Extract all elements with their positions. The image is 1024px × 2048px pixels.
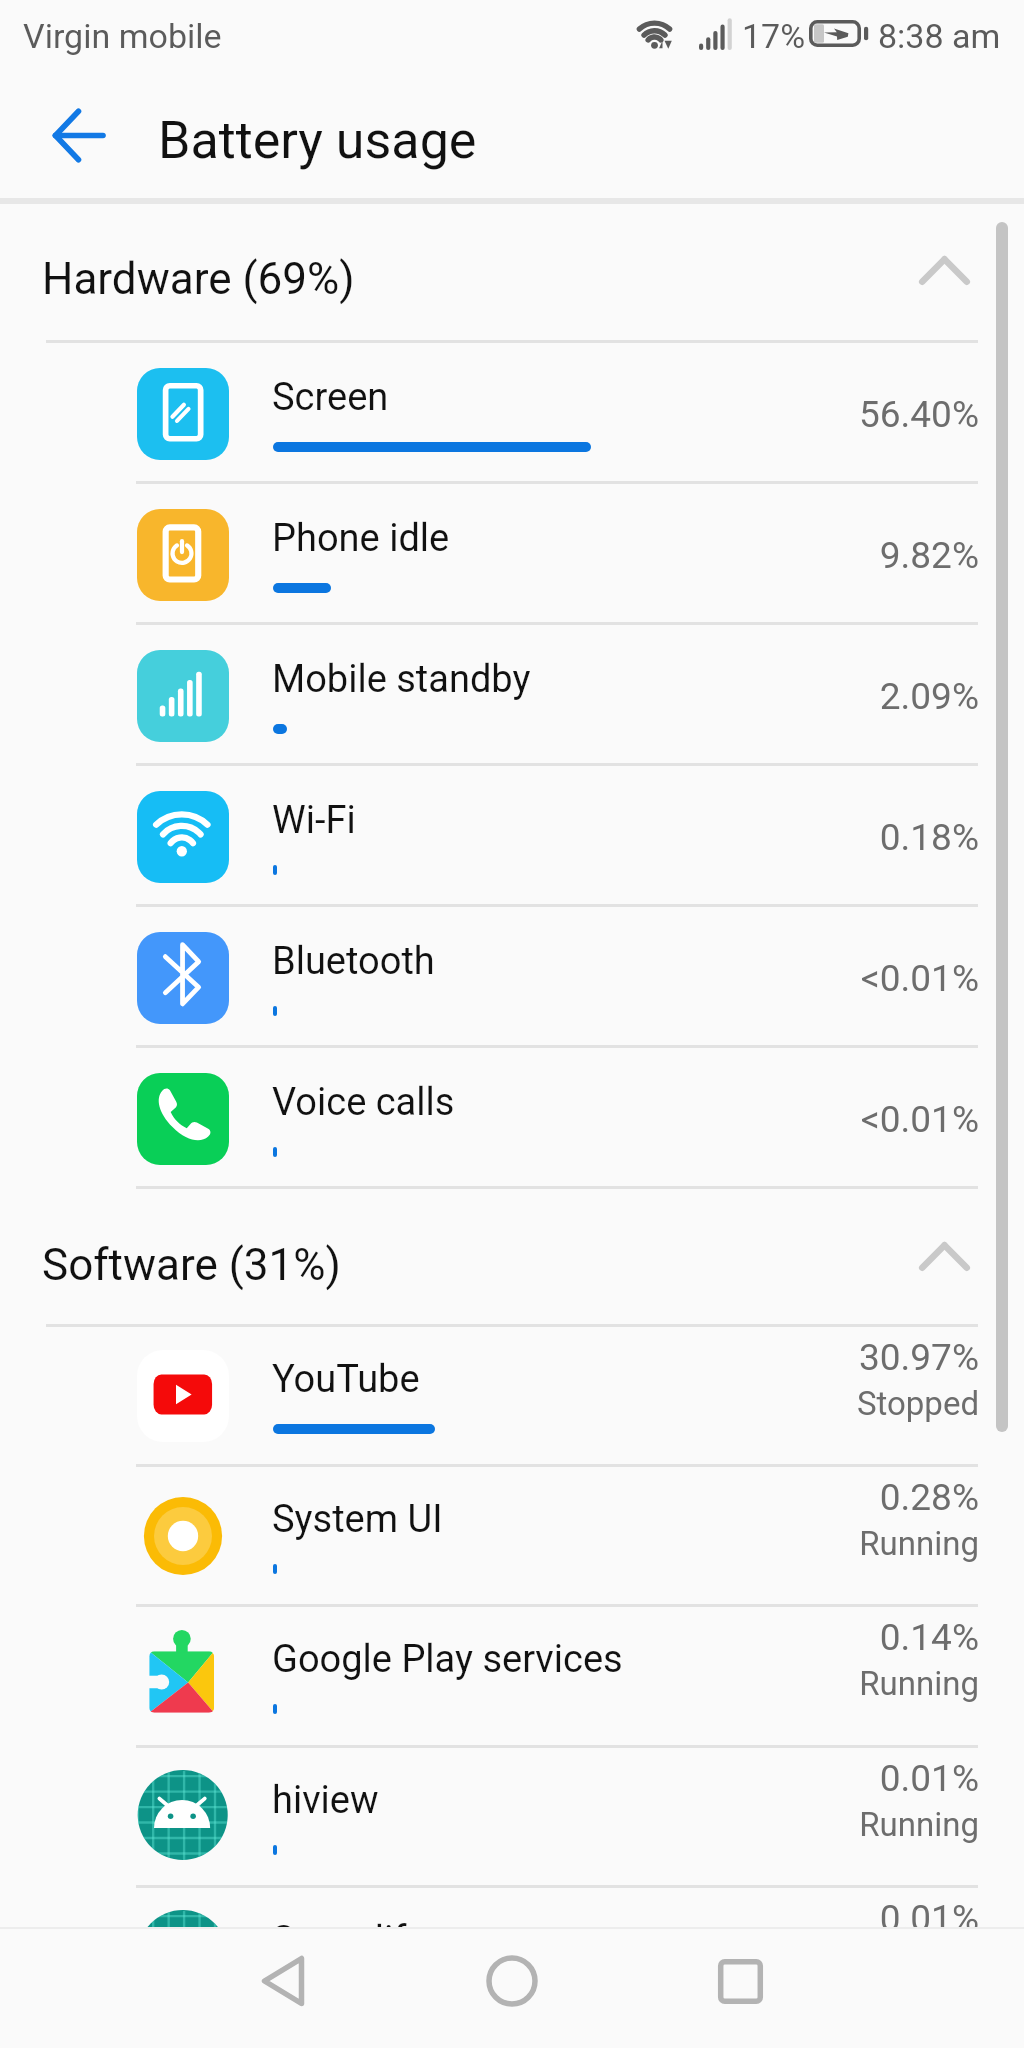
staticText: Wi-Fi [272,798,356,843]
staticText: Bluetooth [272,939,435,984]
staticText: 56.40% [600,393,979,436]
button[interactable]: YouTube [0,1324,1024,1464]
staticText: Voice calls [272,1080,455,1125]
staticText: Smartlife [272,1918,427,1963]
staticText: 0.18% [600,816,979,859]
button[interactable]: Voice calls [0,1045,1024,1186]
button[interactable]: Recent apps [685,1927,795,2037]
button[interactable]: Phone idle [0,481,1024,622]
staticText: Screen [272,375,389,420]
staticText: 0.01% [600,1757,979,1800]
staticText: Mobile standby [272,657,531,702]
button[interactable]: System UI [0,1464,1024,1604]
staticText: Stopped [600,1384,979,1423]
button[interactable]: Home [457,1927,567,2037]
staticText: Running [600,1805,979,1844]
staticText: <0.01% [600,957,979,1000]
staticText: YouTube [272,1357,420,1402]
staticText: Running [600,1945,979,1984]
staticText: Running [600,1664,979,1703]
button[interactable]: Navigate up [26,83,130,187]
button[interactable]: Wi-Fi [0,763,1024,904]
staticText: Software (31%) [42,1239,341,1291]
staticText: 17% [742,16,806,56]
button[interactable]: Screen [0,340,1024,481]
button[interactable]: Google Play services [0,1604,1024,1745]
button[interactable]: hiview [0,1745,1024,1885]
staticText: Battery usage [158,110,477,171]
button[interactable]: Bluetooth [0,904,1024,1045]
staticText: 0.01% [600,1897,979,1940]
button[interactable]: Smartlife [0,1885,1024,2026]
button[interactable]: Back [228,1927,338,2037]
button[interactable]: Mobile standby [0,622,1024,763]
staticText: Phone idle [272,516,450,561]
staticText: 2.09% [600,675,979,718]
staticText: Running [600,1524,979,1563]
staticText: 8:38 am [878,16,1001,56]
staticText: Hardware (69%) [42,253,355,305]
staticText: System UI [272,1497,443,1542]
staticText: Google Play services [272,1637,623,1682]
staticText: 30.97% [600,1336,979,1379]
button[interactable]: Hardware (69%) [0,200,1024,340]
staticText: hiview [272,1778,379,1823]
staticText: 9.82% [600,534,979,577]
staticText: <0.01% [600,1098,979,1141]
staticText: 0.28% [600,1476,979,1519]
button[interactable]: Software (31%) [0,1186,1024,1324]
staticText: Virgin mobile [23,16,222,56]
staticText: 0.14% [600,1616,979,1659]
